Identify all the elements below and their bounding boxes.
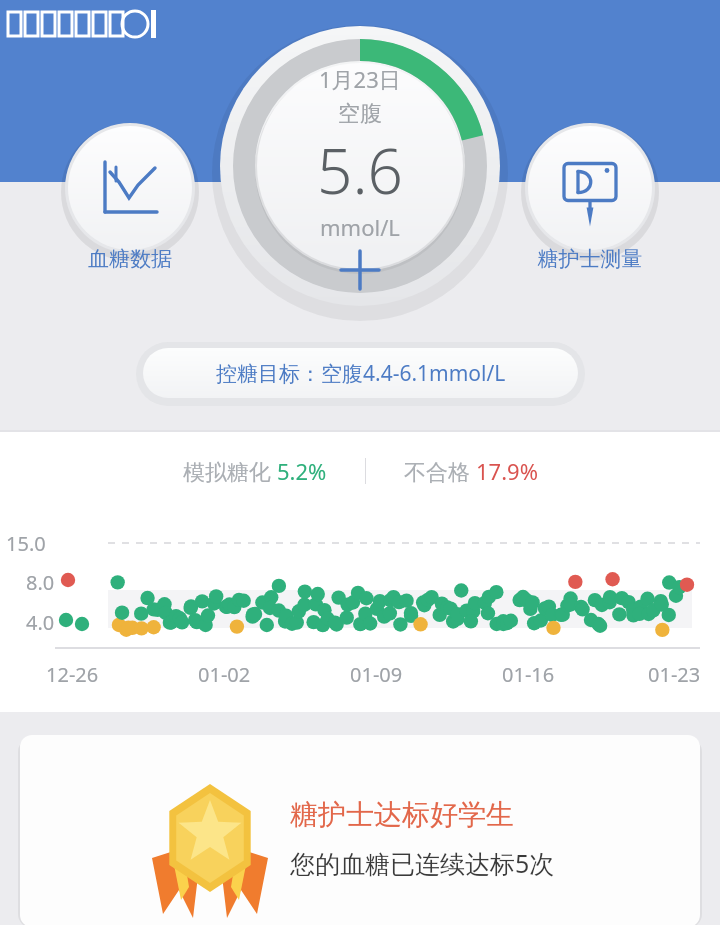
staticText: 8.0 [26, 569, 55, 596]
button[interactable]: 控糖目标：空腹4.4-6.1mmol/L [143, 348, 578, 398]
button[interactable]: 不合格 [404, 456, 538, 486]
button[interactable]: 血糖数据图表 [68, 126, 192, 250]
staticText: 4.0 [26, 609, 55, 636]
button[interactable]: 1月23日 [230, 64, 490, 242]
button[interactable]: 糖护士测量 [500, 246, 680, 272]
staticText: 5.2% [277, 456, 327, 486]
staticText: 控糖目标：空腹4.4-6.1mmol/L [216, 359, 506, 388]
staticText: 17.9% [476, 456, 538, 486]
staticText: 血糖数据 [40, 246, 220, 272]
staticText: 1月23日 [319, 64, 401, 94]
staticText: 12-26 [46, 661, 99, 688]
staticText: 01-09 [350, 661, 403, 688]
staticText: 空腹 [338, 100, 382, 128]
staticText: mmol/L [320, 212, 400, 242]
button[interactable]: 糖护士测量 [528, 126, 652, 250]
staticText: 您的血糖已连续达标5次 [290, 846, 555, 880]
staticText: 糖护士达标好学生 [290, 797, 514, 832]
staticText: 15.0 [6, 530, 46, 557]
staticText: 01-02 [198, 661, 251, 688]
staticText: 模拟糖化 [183, 456, 277, 486]
button[interactable]: 糖护士达标好学生 [20, 735, 700, 925]
button[interactable]: 血糖数据 [40, 246, 220, 272]
button[interactable]: 模拟糖化 [183, 456, 327, 486]
staticText: 01-23 [648, 661, 701, 688]
staticText: 糖护士测量 [500, 246, 680, 272]
staticText: 不合格 [404, 456, 476, 486]
staticText: 01-16 [502, 661, 555, 688]
staticText: 5.6 [317, 128, 403, 212]
